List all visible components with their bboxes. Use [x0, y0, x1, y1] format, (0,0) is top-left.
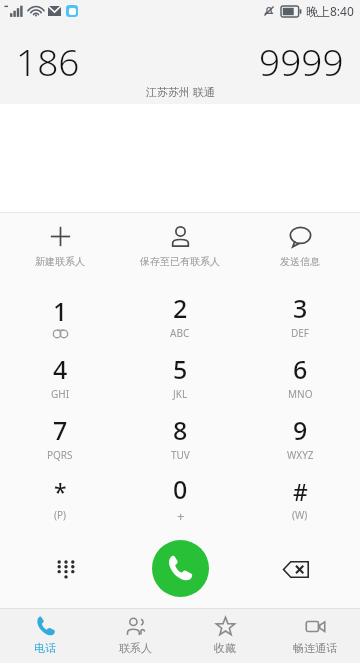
staticText: 9999 [259, 36, 344, 86]
staticText: MNO [288, 387, 313, 401]
button[interactable]: 畅连通话 [270, 608, 360, 663]
button[interactable]: 联系人 [90, 608, 180, 663]
button[interactable]: Backspace [272, 545, 320, 593]
button[interactable]: 7 [0, 407, 120, 468]
staticText: 新建联系人 [35, 255, 85, 268]
staticText: 1 [53, 294, 68, 328]
button[interactable]: 保存至已有联系人 [120, 213, 240, 285]
staticText: + [177, 507, 185, 525]
staticText: 6 [293, 352, 308, 386]
staticText: GHI [51, 387, 70, 401]
staticText: 7 [53, 413, 68, 447]
staticText: PQRS [47, 448, 73, 462]
staticText: DEF [291, 326, 310, 340]
staticText: (P) [54, 508, 67, 522]
staticText: 5 [173, 352, 188, 386]
button[interactable]: 3 [240, 285, 360, 346]
staticText: 186 [16, 36, 80, 86]
staticText: ABC [170, 326, 190, 340]
button[interactable]: 4 [0, 346, 120, 407]
button[interactable]: 新建联系人 [0, 213, 120, 285]
button[interactable]: 2 [120, 285, 240, 346]
staticText: (W) [292, 508, 308, 522]
staticText: # [293, 476, 308, 507]
staticText: 4 [53, 352, 68, 386]
staticText: 8 [173, 413, 188, 447]
button[interactable]: 6 [240, 346, 360, 407]
staticText: TUV [171, 448, 190, 462]
staticText: WXYZ [287, 448, 314, 462]
button[interactable]: 5 [120, 346, 240, 407]
staticText: 2 [173, 291, 188, 325]
button[interactable]: Call [152, 540, 209, 597]
staticText: 3 [293, 291, 308, 325]
button[interactable]: # [240, 468, 360, 529]
staticText: 联系人 [119, 641, 152, 655]
staticText: 电话 [34, 641, 56, 655]
staticText: 晚上8:40 [306, 3, 354, 19]
button[interactable]: 发送信息 [240, 213, 360, 285]
staticText: 保存至已有联系人 [140, 255, 220, 268]
button[interactable]: * [0, 468, 120, 529]
staticText: 0 [173, 472, 188, 506]
button[interactable]: 9 [240, 407, 360, 468]
button[interactable]: Hide dialpad [44, 547, 88, 591]
staticText: 发送信息 [280, 255, 320, 268]
button[interactable]: 电话 [0, 608, 90, 663]
staticText: 收藏 [214, 641, 236, 655]
staticText: 江苏苏州 联通 [146, 84, 215, 99]
staticText: 畅连通话 [293, 641, 337, 655]
staticText: 9 [293, 413, 308, 447]
button[interactable]: 0 [120, 468, 240, 529]
staticText: * [54, 476, 67, 507]
staticText: JKL [173, 387, 188, 401]
button[interactable]: 8 [120, 407, 240, 468]
button[interactable]: 1 [0, 285, 120, 346]
button[interactable]: 收藏 [180, 608, 270, 663]
